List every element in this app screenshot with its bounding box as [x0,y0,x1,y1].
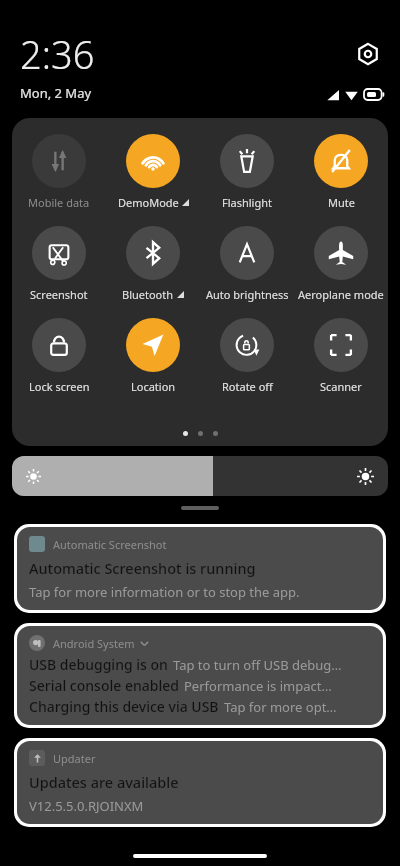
staticText: Tap for more information or to stop the … [29,583,300,601]
staticText: Location [131,379,176,394]
staticText: Charging this device via USB [29,697,219,716]
staticText: USB debugging is on [29,655,168,674]
button[interactable]: Scanner [294,314,388,398]
button[interactable]: Bluetooth [106,222,200,306]
staticText: Android System [53,636,135,651]
button[interactable]: Aeroplane mode [294,222,388,306]
staticText: Rotate off [222,379,273,394]
staticText: Aeroplane mode [298,287,384,302]
staticText: Tap for more opt… [224,698,337,716]
button[interactable]: Lock screen [12,314,106,398]
button[interactable]: Mute [294,130,388,214]
staticText: Auto brightness [206,287,289,302]
staticText: Lock screen [29,379,90,394]
button[interactable]: Updater [17,741,383,824]
staticText: Bluetooth [122,287,174,302]
staticText: Automatic Screenshot [53,537,167,552]
staticText: Flashlight [222,195,272,210]
staticText: Mobile data [28,195,90,210]
button[interactable]: Location [106,314,200,398]
button[interactable]: Flashlight [200,130,294,214]
staticText: Tap to turn off USB debug… [173,656,342,674]
staticText: V12.5.5.0.RJOINXM [29,797,144,815]
staticText: Screenshot [30,287,88,302]
button[interactable]: Screenshot [12,222,106,306]
staticText: Updates are available [29,772,179,792]
staticText: Serial console enabled [29,676,179,695]
staticText: Performance is impact… [184,677,332,695]
staticText: 2:36 [20,28,95,80]
button[interactable]: Rotate off [200,314,294,398]
staticText: Updater [53,751,96,766]
staticText: Automatic Screenshot is running [29,558,256,578]
staticText: Mute [328,195,355,210]
staticText: DemoMode [118,195,179,210]
button[interactable]: Android System [17,626,383,725]
button[interactable]: Auto brightness [200,222,294,306]
button[interactable]: Settings [354,40,382,68]
staticText: Scanner [320,379,362,394]
button[interactable]: Brightness [12,456,388,496]
button[interactable]: DemoMode [106,130,200,214]
staticText: Mon, 2 May [20,84,92,102]
button[interactable]: Automatic Screenshot [17,527,383,610]
button[interactable]: Mobile data [12,130,106,214]
